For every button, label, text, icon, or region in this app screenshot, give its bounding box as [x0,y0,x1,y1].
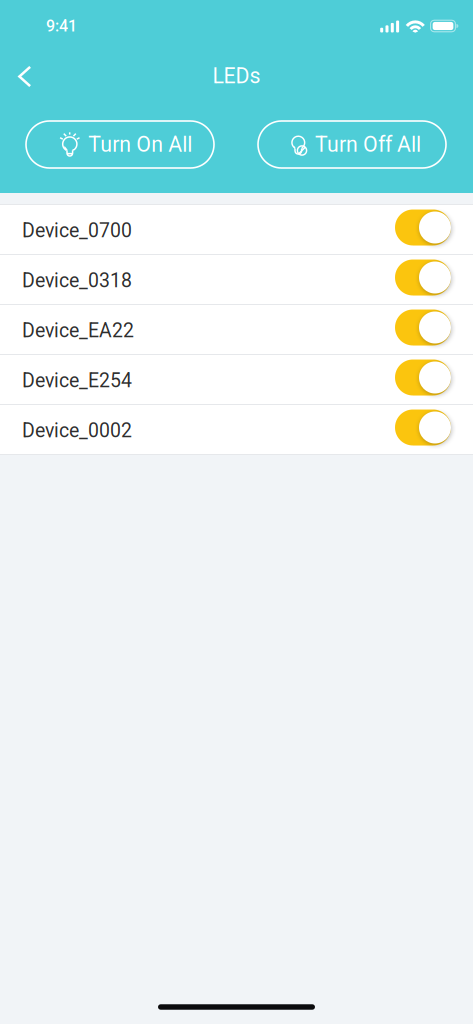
staticText: Turn Off All [315,132,421,157]
staticText: Device_0002 [22,419,132,442]
button[interactable]: Turn Off All [258,121,446,168]
staticText: LEDs [212,63,260,88]
button[interactable]: Back [0,53,47,95]
button[interactable]: Turn On All [26,121,214,168]
button[interactable]: Device_0318 [0,255,473,305]
staticText: Device_0318 [22,269,132,292]
button[interactable]: Device_0700 [0,205,473,255]
button[interactable]: Device_E254 [0,355,473,405]
staticText: Turn On All [88,132,192,157]
button[interactable]: Device_0002 [0,405,473,455]
staticText: Device_0700 [22,219,132,242]
staticText: Device_E254 [22,369,132,392]
staticText: Device_EA22 [22,319,134,342]
button[interactable]: Device_EA22 [0,305,473,355]
staticText: 9:41 [46,17,77,35]
